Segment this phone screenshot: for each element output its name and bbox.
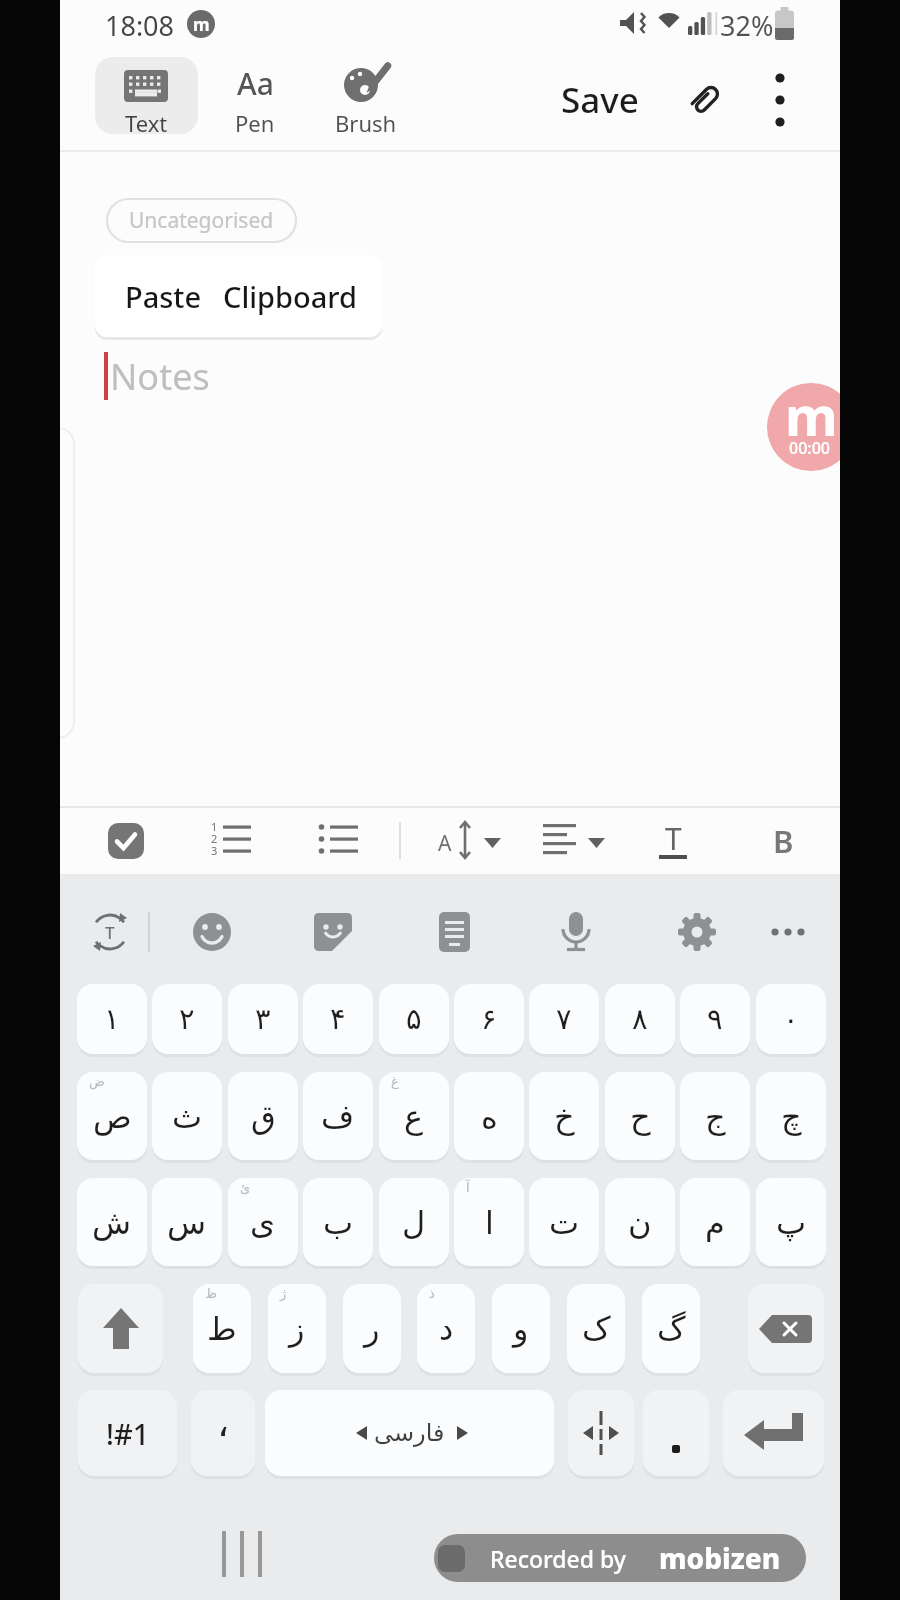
staticText: ا [485,1204,494,1241]
staticText: ق [251,1098,276,1135]
staticText: mobizen [659,1539,781,1577]
staticText: 2 [211,831,218,846]
staticText: و [513,1310,529,1347]
staticText: m [785,378,838,452]
staticText: خ [554,1098,575,1135]
staticText: B [773,820,794,860]
staticText: ی [250,1204,276,1241]
staticText: ت [549,1204,580,1241]
staticText: آ [466,1180,470,1195]
staticText: Pen [235,108,275,136]
staticText: ۲ [179,1002,195,1036]
staticText: د [439,1310,454,1347]
staticText: ذ [429,1286,435,1301]
staticText: ۳ [255,1002,271,1036]
staticText: ، [217,1401,230,1445]
staticText: A [438,829,452,858]
staticText: ۱ [104,1002,120,1036]
staticText: م [705,1204,725,1241]
staticText: Recorded by [490,1543,626,1574]
staticText: ۸ [632,1002,648,1036]
staticText: 32% [720,7,774,44]
staticText: غ [391,1074,399,1089]
staticText: فارسی [374,1419,445,1447]
staticText: ج [705,1098,726,1135]
staticText: ئ [240,1180,251,1195]
staticText: ح [630,1098,651,1135]
staticText: Brush [335,108,397,136]
staticText: چ [781,1098,802,1135]
staticText: ۵ [406,1002,422,1036]
staticText: 1 [211,819,218,834]
staticText: ژ [280,1286,287,1301]
staticText: ل [402,1204,426,1241]
staticText: گ [657,1310,686,1347]
staticText: !#1 [106,1414,150,1453]
staticText: 18:08 [105,7,175,44]
staticText: ع [404,1098,424,1135]
staticText: ۷ [556,1002,572,1036]
staticText: Clipboard [223,277,358,316]
staticText: Aa [237,63,274,104]
staticText: ز [289,1310,305,1347]
staticText: Notes [110,352,210,400]
staticText: T [105,921,115,944]
staticText: Save [561,76,639,122]
staticText: ک [582,1310,611,1347]
staticText: ۹ [707,1002,723,1036]
staticText: Uncategorised [129,206,274,235]
staticText: ط [207,1310,237,1347]
staticText: ر [364,1310,380,1347]
staticText: 00:00 [789,437,830,459]
staticText: m [193,13,210,36]
staticText: پ [776,1204,807,1241]
staticText: T [665,818,682,856]
staticText: ب [323,1204,354,1241]
staticText: ف [321,1098,355,1135]
staticText: ش [92,1204,132,1241]
staticText: ض [89,1074,105,1089]
staticText: ن [628,1204,652,1241]
staticText: ث [172,1098,203,1135]
staticText: ۰ [783,1002,799,1036]
staticText: ص [93,1098,132,1135]
staticText: ۴ [330,1002,346,1036]
staticText: ۶ [481,1002,497,1036]
staticText: ظ [205,1286,218,1301]
staticText: س [167,1204,207,1241]
staticText: ه [481,1098,498,1135]
staticText: Text [125,108,168,136]
staticText: 3 [211,843,218,858]
staticText: Paste [125,277,202,316]
